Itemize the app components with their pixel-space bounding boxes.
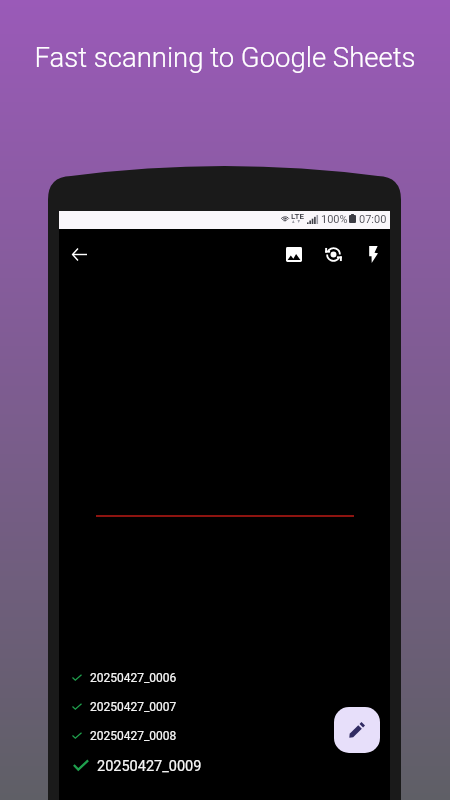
staticText: 20250427_0007 [90, 700, 177, 714]
button[interactable]: Switch camera [312, 233, 354, 275]
button[interactable]: Flash [352, 233, 394, 275]
button[interactable]: 20250427_0008 [67, 724, 277, 748]
button[interactable]: 20250427_0007 [67, 695, 277, 719]
button[interactable]: Edit [334, 707, 380, 753]
staticText: LTE [291, 212, 304, 221]
button[interactable]: 20250427_0009 [67, 754, 277, 778]
button[interactable]: Back [58, 233, 100, 275]
staticText: 20250427_0006 [90, 671, 177, 685]
staticText: 20250427_0009 [97, 758, 202, 775]
staticText: 100% [321, 213, 348, 226]
staticText: 20250427_0008 [90, 729, 177, 743]
staticText: 07:00 [359, 213, 387, 226]
button[interactable]: 20250427_0006 [67, 666, 277, 690]
button[interactable]: Gallery [273, 233, 315, 275]
staticText: Fast scanning to Google Sheets [0, 41, 450, 73]
